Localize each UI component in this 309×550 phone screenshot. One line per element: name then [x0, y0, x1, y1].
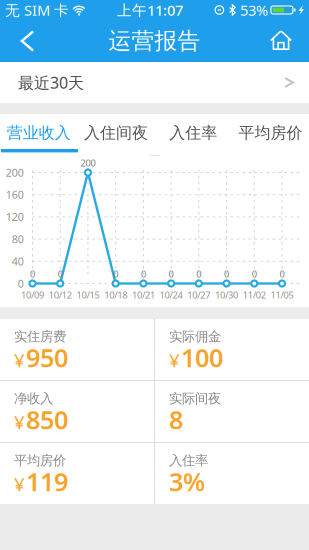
staticText: 0	[252, 268, 257, 280]
staticText: 10/12	[49, 289, 72, 301]
staticText: ¥	[169, 347, 180, 372]
staticText: 平均房价	[14, 452, 66, 469]
staticText: 10/15	[76, 289, 99, 301]
staticText: 最近30天	[18, 72, 84, 93]
staticText: 10/27	[187, 289, 210, 301]
staticText: 营业收入	[7, 123, 71, 143]
staticText: 120	[6, 210, 24, 224]
staticText: 0	[58, 268, 63, 280]
staticText: 0	[279, 268, 284, 280]
staticText: ¥	[14, 347, 25, 372]
staticText: 入住间夜	[84, 123, 148, 143]
staticText: 200	[80, 157, 95, 169]
button[interactable]: 最近30天	[0, 62, 309, 103]
staticText: 入住率	[169, 123, 217, 143]
button[interactable]: 平均房价	[232, 114, 309, 156]
staticText: 0	[196, 268, 201, 280]
staticText: 8	[169, 403, 183, 436]
staticText: 80	[12, 232, 24, 246]
staticText: 160	[6, 188, 24, 202]
staticText: 0	[30, 268, 35, 280]
staticText: 200	[6, 165, 24, 180]
staticText: 10/30	[215, 289, 238, 301]
staticText: 入住率	[169, 452, 208, 469]
staticText: 无 SIM 卡	[5, 0, 69, 20]
staticText: 11/05	[270, 289, 293, 301]
staticText: 11/02	[243, 289, 266, 301]
staticText: 0	[18, 276, 24, 291]
staticText: 平均房价	[238, 123, 302, 143]
staticText: 100	[181, 341, 223, 374]
staticText: 上午11:07	[117, 0, 183, 20]
staticText: ¥	[14, 471, 25, 496]
staticText: ¥	[14, 409, 25, 434]
button[interactable]: 入住率	[154, 114, 232, 156]
staticText: 0	[113, 268, 118, 280]
staticText: 10/09	[21, 289, 44, 301]
button[interactable]: 返回	[0, 20, 55, 62]
staticText: 运营报告	[108, 27, 200, 55]
staticText: 10/24	[160, 289, 183, 301]
button[interactable]: 首页	[253, 20, 309, 62]
staticText: 实际间夜	[169, 390, 221, 407]
staticText: 850	[26, 403, 68, 436]
staticText: 40	[12, 254, 24, 268]
staticText: 53%	[240, 0, 268, 20]
staticText: 实际佣金	[169, 328, 221, 345]
staticText: 3%	[169, 465, 205, 498]
staticText: 0	[141, 268, 146, 280]
button[interactable]: 入住间夜	[77, 114, 154, 156]
button[interactable]: 营业收入	[0, 114, 77, 156]
staticText: 净收入	[14, 390, 53, 407]
staticText: 0	[169, 268, 174, 280]
staticText: 10/18	[104, 289, 127, 301]
staticText: 0	[224, 268, 229, 280]
staticText: 实住房费	[14, 328, 66, 345]
staticText: 10/21	[132, 289, 155, 301]
staticText: 119	[26, 465, 68, 498]
staticText: 950	[26, 341, 68, 374]
